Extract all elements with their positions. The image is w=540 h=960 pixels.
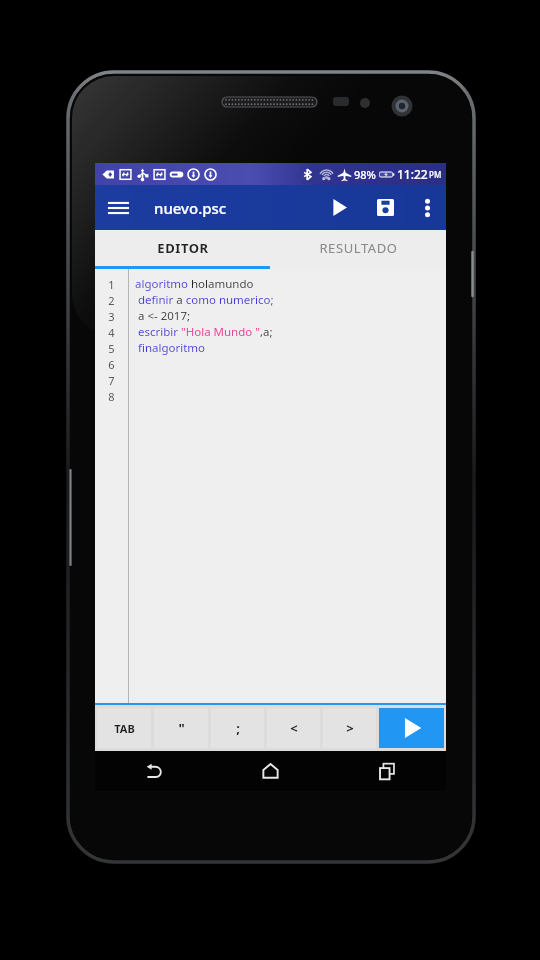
staticText: definir a como numerico;	[135, 292, 274, 308]
button[interactable]: "	[154, 708, 208, 748]
button[interactable]: Home	[212, 751, 329, 791]
staticText: 2	[108, 293, 115, 308]
staticText: a <- 2017;	[135, 308, 191, 324]
staticText: RESULTADO	[319, 239, 398, 257]
staticText: finalgoritmo	[135, 340, 206, 356]
staticText: escribir "Hola Mundo ",a;	[135, 324, 273, 340]
button[interactable]: >	[323, 708, 376, 748]
staticText: 98%	[354, 167, 376, 182]
staticText: 8	[108, 389, 115, 404]
button[interactable]: ;	[211, 708, 264, 748]
button[interactable]: Open navigation menu	[95, 185, 141, 230]
staticText: TAB	[114, 721, 135, 736]
button[interactable]: Save file	[362, 185, 408, 230]
staticText: <	[290, 719, 298, 737]
staticText: 1	[108, 277, 115, 292]
button[interactable]: Back	[95, 751, 212, 791]
button[interactable]: EDITOR	[95, 230, 270, 266]
button[interactable]: TAB	[97, 708, 151, 748]
staticText: 7	[108, 373, 115, 388]
staticText: ;	[236, 719, 240, 737]
button[interactable]: <	[267, 708, 320, 748]
staticText: EDITOR	[157, 239, 209, 257]
button[interactable]: Run	[379, 708, 444, 748]
staticText: 5	[108, 341, 115, 356]
staticText: 11:22	[397, 166, 428, 182]
staticText: PM	[429, 169, 442, 180]
button[interactable]: RESULTADO	[270, 230, 446, 266]
staticText: nuevo.psc	[154, 198, 227, 218]
staticText: "	[178, 719, 185, 737]
staticText: 4	[108, 325, 115, 340]
staticText: 3	[108, 309, 115, 324]
button[interactable]: Recent apps	[329, 751, 446, 791]
staticText: 6	[108, 357, 115, 372]
button[interactable]: Run program	[316, 185, 362, 230]
button[interactable]: More options	[408, 185, 446, 230]
staticText: >	[346, 719, 354, 737]
staticText: algoritmo holamundo	[135, 276, 254, 292]
